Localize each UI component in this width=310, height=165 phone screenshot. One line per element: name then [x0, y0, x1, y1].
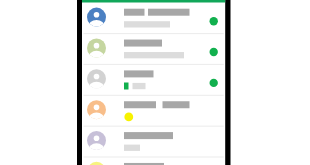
button[interactable] [82, 3, 225, 34]
button[interactable] [82, 34, 225, 65]
button[interactable] [82, 158, 225, 165]
button[interactable] [82, 96, 225, 127]
button[interactable] [82, 65, 225, 96]
button[interactable] [82, 127, 225, 158]
